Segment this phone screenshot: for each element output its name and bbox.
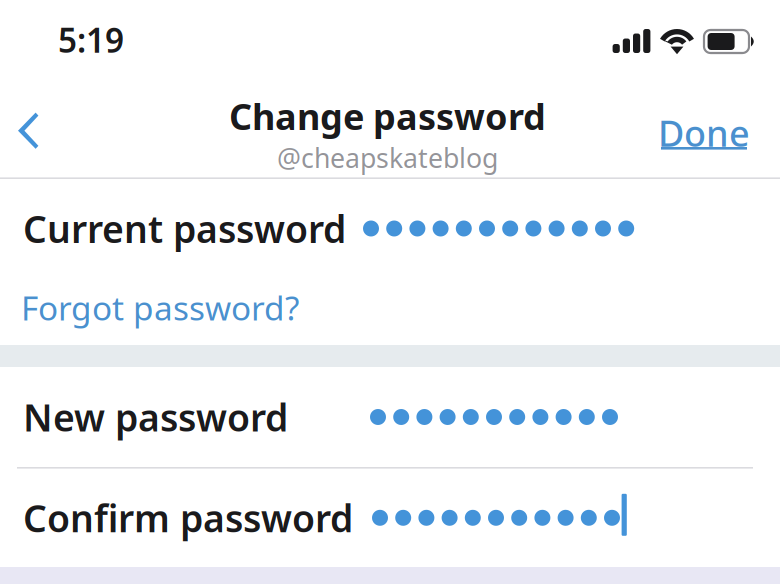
staticText: Done [658, 109, 750, 157]
staticText: Current password [23, 204, 346, 253]
staticText: Confirm password [23, 493, 353, 543]
staticText: 5:19 [58, 18, 124, 62]
staticText: Forgot password? [21, 285, 299, 330]
button[interactable]: New password [0, 367, 780, 467]
staticText: @cheapskateblog [277, 140, 498, 175]
staticText: New password [23, 392, 288, 442]
button[interactable]: Forgot password? [0, 278, 780, 345]
button[interactable]: Done [658, 79, 780, 177]
button[interactable]: Back [0, 78, 63, 178]
button[interactable]: Current password [0, 179, 780, 278]
button[interactable]: Confirm password [0, 469, 780, 567]
staticText: Change password [229, 92, 546, 140]
